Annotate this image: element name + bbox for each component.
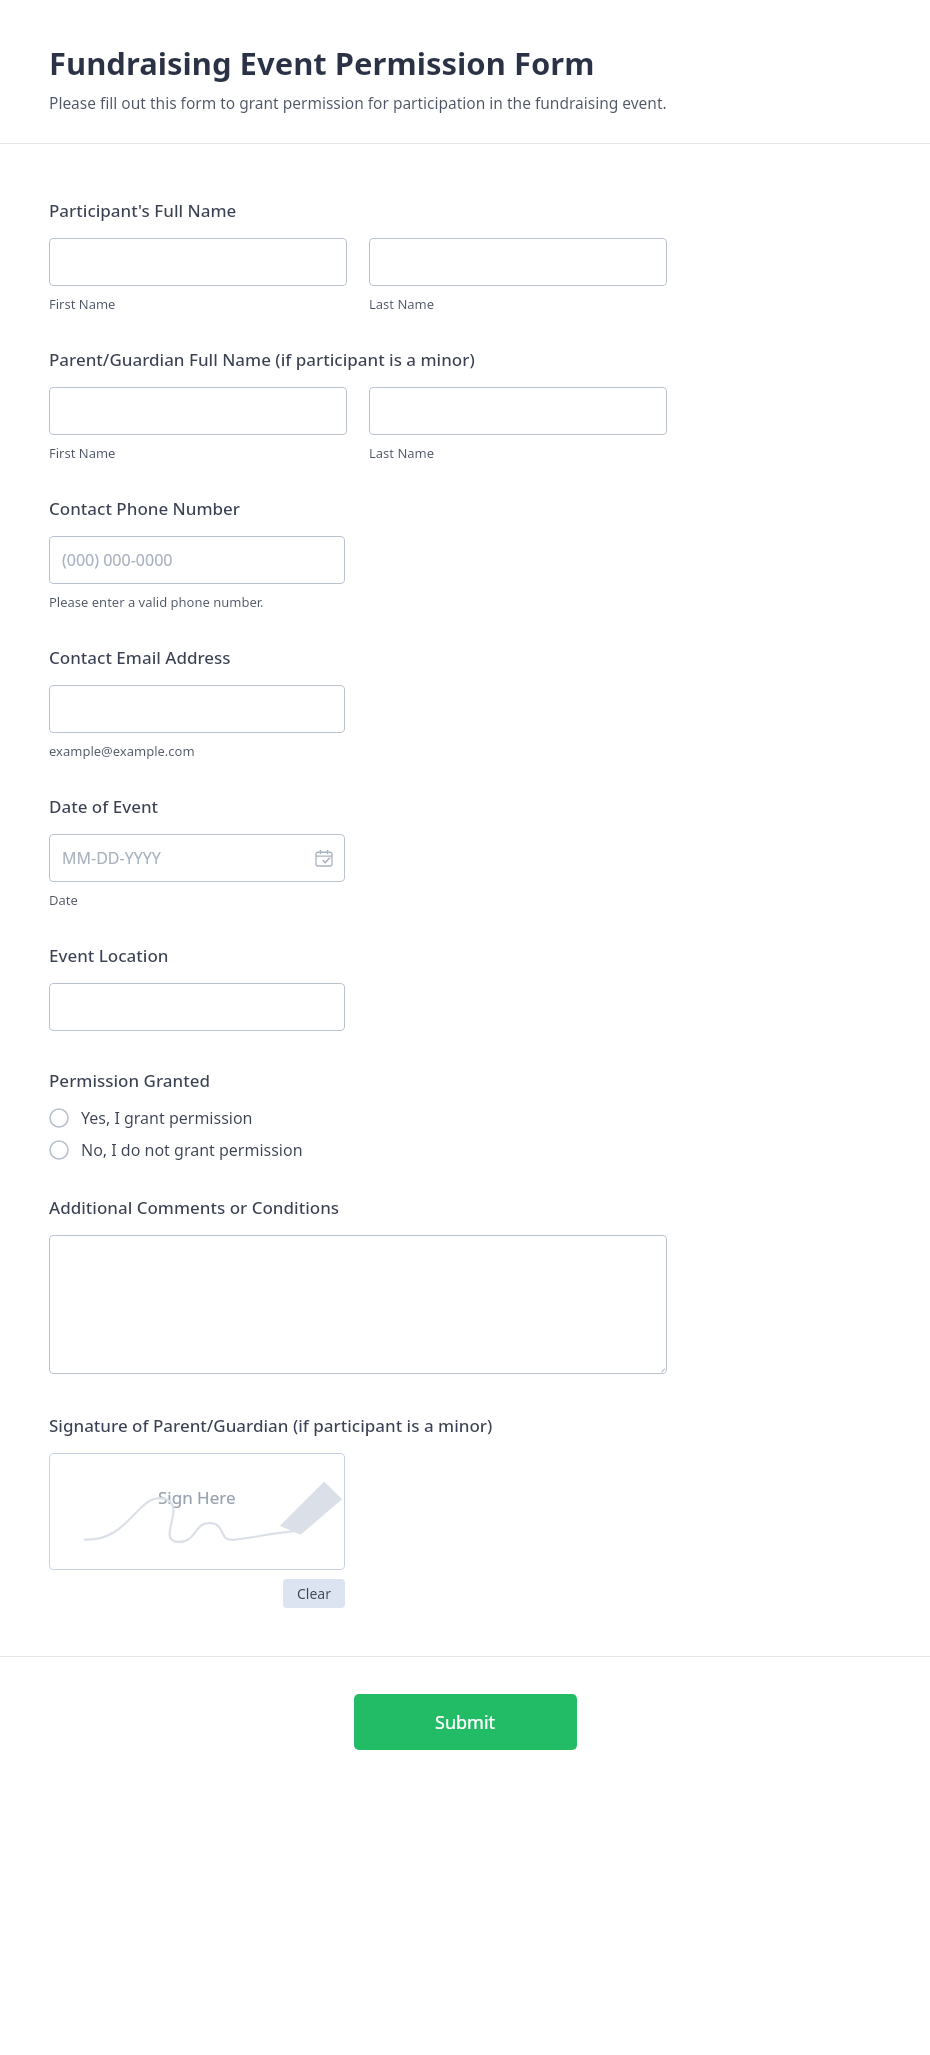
button[interactable]: (000) 000-0000 bbox=[49, 536, 345, 584]
button[interactable]: Signature pad bbox=[49, 1453, 345, 1570]
button[interactable] bbox=[49, 685, 345, 733]
staticText: MM-DD-YYYY bbox=[62, 847, 161, 869]
button[interactable]: Clear bbox=[283, 1579, 345, 1608]
staticText: Last Name bbox=[369, 444, 435, 462]
staticText: Event Location bbox=[49, 944, 169, 967]
staticText: Date of Event bbox=[49, 795, 159, 818]
staticText: Date bbox=[49, 891, 78, 909]
staticText: Contact Phone Number bbox=[49, 497, 241, 520]
button[interactable]: MM-DD-YYYY bbox=[49, 834, 345, 882]
staticText: Participant's Full Name bbox=[49, 199, 237, 222]
staticText: No, I do not grant permission bbox=[81, 1139, 303, 1161]
staticText: Submit bbox=[435, 1710, 496, 1735]
staticText: Additional Comments or Conditions bbox=[49, 1196, 340, 1219]
staticText: example@example.com bbox=[49, 742, 195, 760]
button[interactable] bbox=[49, 238, 347, 286]
button[interactable] bbox=[369, 387, 667, 435]
button[interactable]: Submit bbox=[354, 1694, 577, 1750]
staticText: Contact Email Address bbox=[49, 646, 231, 669]
staticText: (000) 000-0000 bbox=[62, 549, 173, 571]
button[interactable] bbox=[49, 983, 345, 1031]
staticText: Parent/Guardian Full Name (if participan… bbox=[49, 348, 475, 371]
button[interactable] bbox=[369, 238, 667, 286]
staticText: First Name bbox=[49, 295, 116, 313]
staticText: Signature of Parent/Guardian (if partici… bbox=[49, 1414, 493, 1437]
staticText: Fundraising Event Permission Form bbox=[49, 42, 595, 84]
staticText: Clear bbox=[297, 1584, 331, 1603]
button[interactable] bbox=[49, 387, 347, 435]
staticText: Last Name bbox=[369, 295, 435, 313]
button[interactable]: No, I do not grant permission bbox=[49, 1134, 303, 1166]
staticText: Please fill out this form to grant permi… bbox=[49, 92, 667, 113]
staticText: Sign Here bbox=[158, 1486, 236, 1509]
staticText: First Name bbox=[49, 444, 116, 462]
staticText: Please enter a valid phone number. bbox=[49, 593, 264, 611]
button[interactable]: Yes, I grant permission bbox=[49, 1102, 253, 1134]
staticText: Yes, I grant permission bbox=[81, 1107, 253, 1129]
staticText: Permission Granted bbox=[49, 1069, 210, 1092]
button[interactable] bbox=[49, 1235, 667, 1374]
